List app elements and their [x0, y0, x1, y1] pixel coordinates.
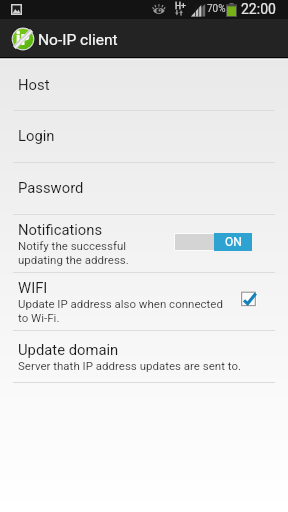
staticText: H+	[175, 1, 186, 11]
staticText: Update IP address also when connected to…	[18, 297, 223, 325]
staticText: Update domain	[18, 341, 119, 358]
staticText: ON	[225, 235, 242, 249]
button[interactable]: WIFI checkbox, checked	[240, 290, 260, 310]
button[interactable]: Update domain	[0, 331, 288, 382]
button[interactable]: Host	[0, 60, 288, 110]
staticText: 22:00	[241, 1, 276, 17]
staticText: Password	[18, 179, 84, 196]
staticText: Host	[18, 76, 50, 93]
staticText: No-IP client	[38, 31, 118, 49]
staticText: Server thath IP address updates are sent…	[18, 359, 242, 372]
staticText: Notify the successful updating the addre…	[18, 239, 129, 267]
staticText: Notifications	[18, 221, 103, 238]
button[interactable]: Notifications toggle, on	[174, 233, 252, 251]
button[interactable]: Notifications	[0, 215, 288, 272]
button[interactable]: WIFI	[0, 273, 288, 330]
staticText: Login	[18, 127, 55, 144]
button[interactable]: Login	[0, 111, 288, 162]
staticText: WIFI	[18, 279, 48, 296]
button[interactable]: Password	[0, 163, 288, 214]
staticText: 70%	[207, 3, 226, 15]
